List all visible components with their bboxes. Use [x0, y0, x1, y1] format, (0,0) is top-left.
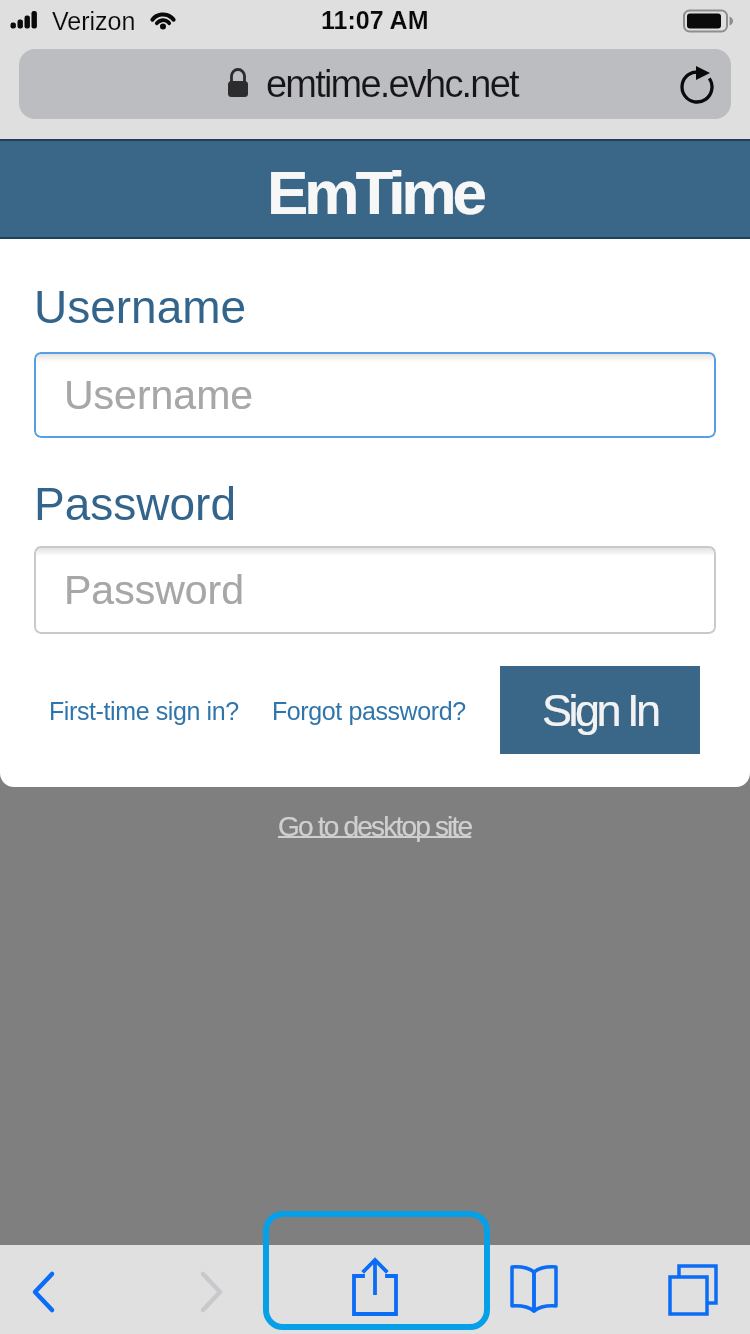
staticText: Password	[34, 478, 236, 529]
staticText: EmTime	[267, 158, 484, 227]
button[interactable]	[662, 1258, 724, 1320]
button[interactable]: Go to desktop site	[278, 811, 472, 842]
button[interactable]: Sign In	[500, 666, 700, 754]
button[interactable]: Forgot password?	[272, 697, 466, 725]
button[interactable]: emtime.evhc.net	[19, 49, 731, 119]
staticText: Password	[64, 567, 245, 613]
staticText: First-time sign in?	[49, 697, 239, 725]
button[interactable]: Password	[34, 546, 716, 634]
button[interactable]: First-time sign in?	[49, 697, 239, 725]
button[interactable]	[679, 66, 717, 106]
staticText: Go to desktop site	[278, 811, 472, 842]
staticText: Forgot password?	[272, 697, 466, 725]
button[interactable]	[508, 1262, 562, 1320]
button[interactable]	[20, 1264, 72, 1320]
staticText: Username	[64, 372, 254, 418]
staticText: 11:07 AM	[321, 6, 429, 34]
staticText: Username	[34, 281, 247, 332]
staticText: Verizon	[52, 7, 136, 35]
button[interactable]: Username	[34, 352, 716, 438]
staticText: emtime.evhc.net	[266, 63, 518, 105]
button[interactable]	[345, 1253, 405, 1321]
button[interactable]	[187, 1264, 239, 1320]
staticText: Sign In	[542, 685, 658, 735]
